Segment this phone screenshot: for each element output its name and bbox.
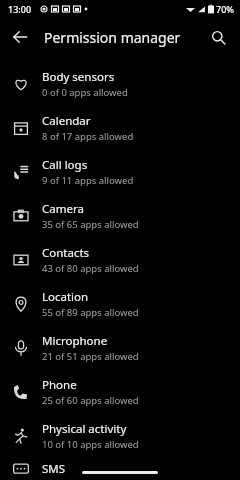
- staticText: Location: [42, 289, 89, 305]
- button[interactable]: Physical activity: [0, 414, 240, 458]
- button[interactable]: Body sensors: [0, 62, 240, 106]
- staticText: 9 of 11 apps allowed: [42, 174, 134, 187]
- staticText: Physical activity: [42, 421, 127, 437]
- button[interactable]: Camera: [0, 194, 240, 238]
- staticText: 70%: [216, 3, 234, 15]
- staticText: Permission manager: [44, 28, 181, 47]
- staticText: 55 of 89 apps allowed: [42, 306, 139, 319]
- staticText: Camera: [42, 201, 84, 217]
- button[interactable]: Contacts: [0, 238, 240, 282]
- staticText: Calendar: [42, 113, 91, 129]
- staticText: 10 of 10 apps allowed: [42, 438, 139, 451]
- staticText: Microphone: [42, 333, 108, 349]
- staticText: 13:00: [8, 3, 32, 15]
- staticText: 8 of 17 apps allowed: [42, 130, 134, 143]
- button[interactable]: Search: [204, 23, 232, 51]
- button[interactable]: Microphone: [0, 326, 240, 370]
- staticText: Phone: [42, 377, 77, 393]
- staticText: Contacts: [42, 245, 90, 261]
- button[interactable]: Location: [0, 282, 240, 326]
- staticText: 43 of 80 apps allowed: [42, 262, 139, 275]
- staticText: Call logs: [42, 157, 88, 173]
- staticText: 25 of 60 apps allowed: [42, 394, 139, 407]
- staticText: SMS: [42, 461, 66, 477]
- staticText: 35 of 65 apps allowed: [42, 218, 139, 231]
- staticText: 0 of 0 apps allowed: [42, 86, 128, 99]
- staticText: Body sensors: [42, 69, 115, 85]
- button[interactable]: Back: [6, 23, 34, 51]
- button[interactable]: Phone: [0, 370, 240, 414]
- button[interactable]: Call logs: [0, 150, 240, 194]
- button[interactable]: SMS: [0, 458, 240, 480]
- button[interactable]: Calendar: [0, 106, 240, 150]
- staticText: 21 of 51 apps allowed: [42, 350, 139, 363]
